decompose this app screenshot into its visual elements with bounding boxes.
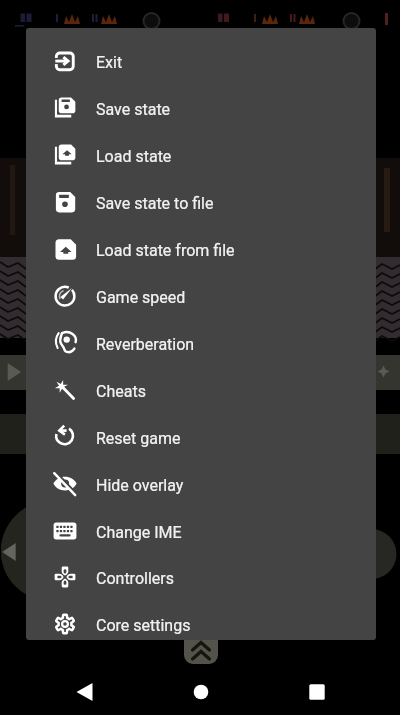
staticText: Game speed	[96, 288, 186, 307]
button[interactable]: Recent apps	[287, 667, 347, 715]
button[interactable]: Hide overlay	[26, 462, 376, 509]
button[interactable]: Controllers	[26, 555, 376, 602]
staticText: Load state from file	[96, 241, 235, 260]
staticText: Save state	[96, 100, 171, 119]
staticText: Exit	[96, 53, 123, 72]
button[interactable]: Load state from file	[26, 227, 376, 274]
button[interactable]: Save state	[26, 86, 376, 133]
button[interactable]: Core settings	[26, 602, 376, 640]
staticText: Save state to file	[96, 194, 214, 213]
button[interactable]: Exit	[26, 39, 376, 86]
button[interactable]: Home	[171, 667, 231, 715]
staticText: Controllers	[96, 569, 174, 588]
button[interactable]: Save state to file	[26, 180, 376, 227]
button[interactable]: Game speed	[26, 274, 376, 321]
staticText: Change IME	[96, 523, 182, 542]
button[interactable]: Reset game	[26, 415, 376, 462]
button[interactable]: Load state	[26, 133, 376, 180]
staticText: Reverberation	[96, 335, 195, 354]
button[interactable]: Back	[54, 667, 114, 715]
button[interactable]: Change IME	[26, 509, 376, 556]
staticText: Load state	[96, 147, 172, 166]
button[interactable]: Reverberation	[26, 321, 376, 368]
button[interactable]: Show toolbar	[184, 630, 218, 664]
staticText: Hide overlay	[96, 476, 184, 495]
button[interactable]: Cheats	[26, 368, 376, 415]
staticText: Core settings	[96, 616, 191, 635]
staticText: Cheats	[96, 382, 146, 401]
staticText: Reset game	[96, 429, 181, 448]
